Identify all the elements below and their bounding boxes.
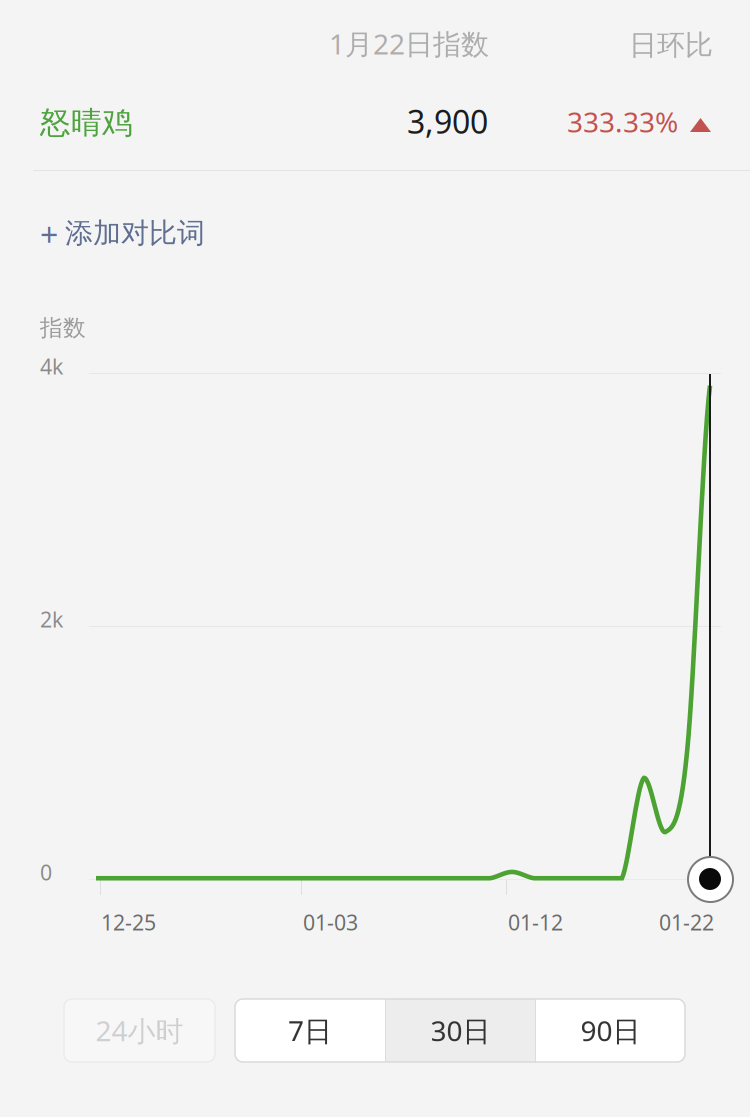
staticText: 怒晴鸡	[40, 104, 133, 142]
staticText: 01-03	[303, 908, 358, 936]
staticText: 01-22	[659, 908, 714, 936]
staticText: 指数	[40, 314, 86, 342]
staticText: 1月22日指数	[329, 25, 489, 62]
button[interactable]: 怒晴鸡	[0, 72, 750, 172]
staticText: 333.33%	[567, 103, 678, 140]
button[interactable]: 90日	[536, 999, 685, 1062]
button[interactable]: 7日	[235, 999, 385, 1062]
staticText: 3,900	[407, 100, 488, 142]
staticText: 0	[40, 858, 52, 886]
staticText: 日环比	[629, 28, 713, 62]
staticText: 7日	[288, 1012, 332, 1049]
button[interactable]: 24小时	[64, 999, 215, 1062]
staticText: 01-12	[508, 908, 563, 936]
staticText: +	[40, 213, 58, 255]
staticText: 2k	[40, 605, 63, 633]
staticText: 90日	[580, 1012, 640, 1049]
staticText: 24小时	[95, 1012, 183, 1049]
staticText: 12-25	[101, 908, 156, 936]
staticText: 4k	[40, 352, 63, 380]
staticText: 添加对比词	[65, 216, 205, 250]
staticText: 30日	[430, 1012, 490, 1049]
button[interactable]: 30日	[386, 999, 535, 1062]
button[interactable]: +	[38, 197, 268, 263]
